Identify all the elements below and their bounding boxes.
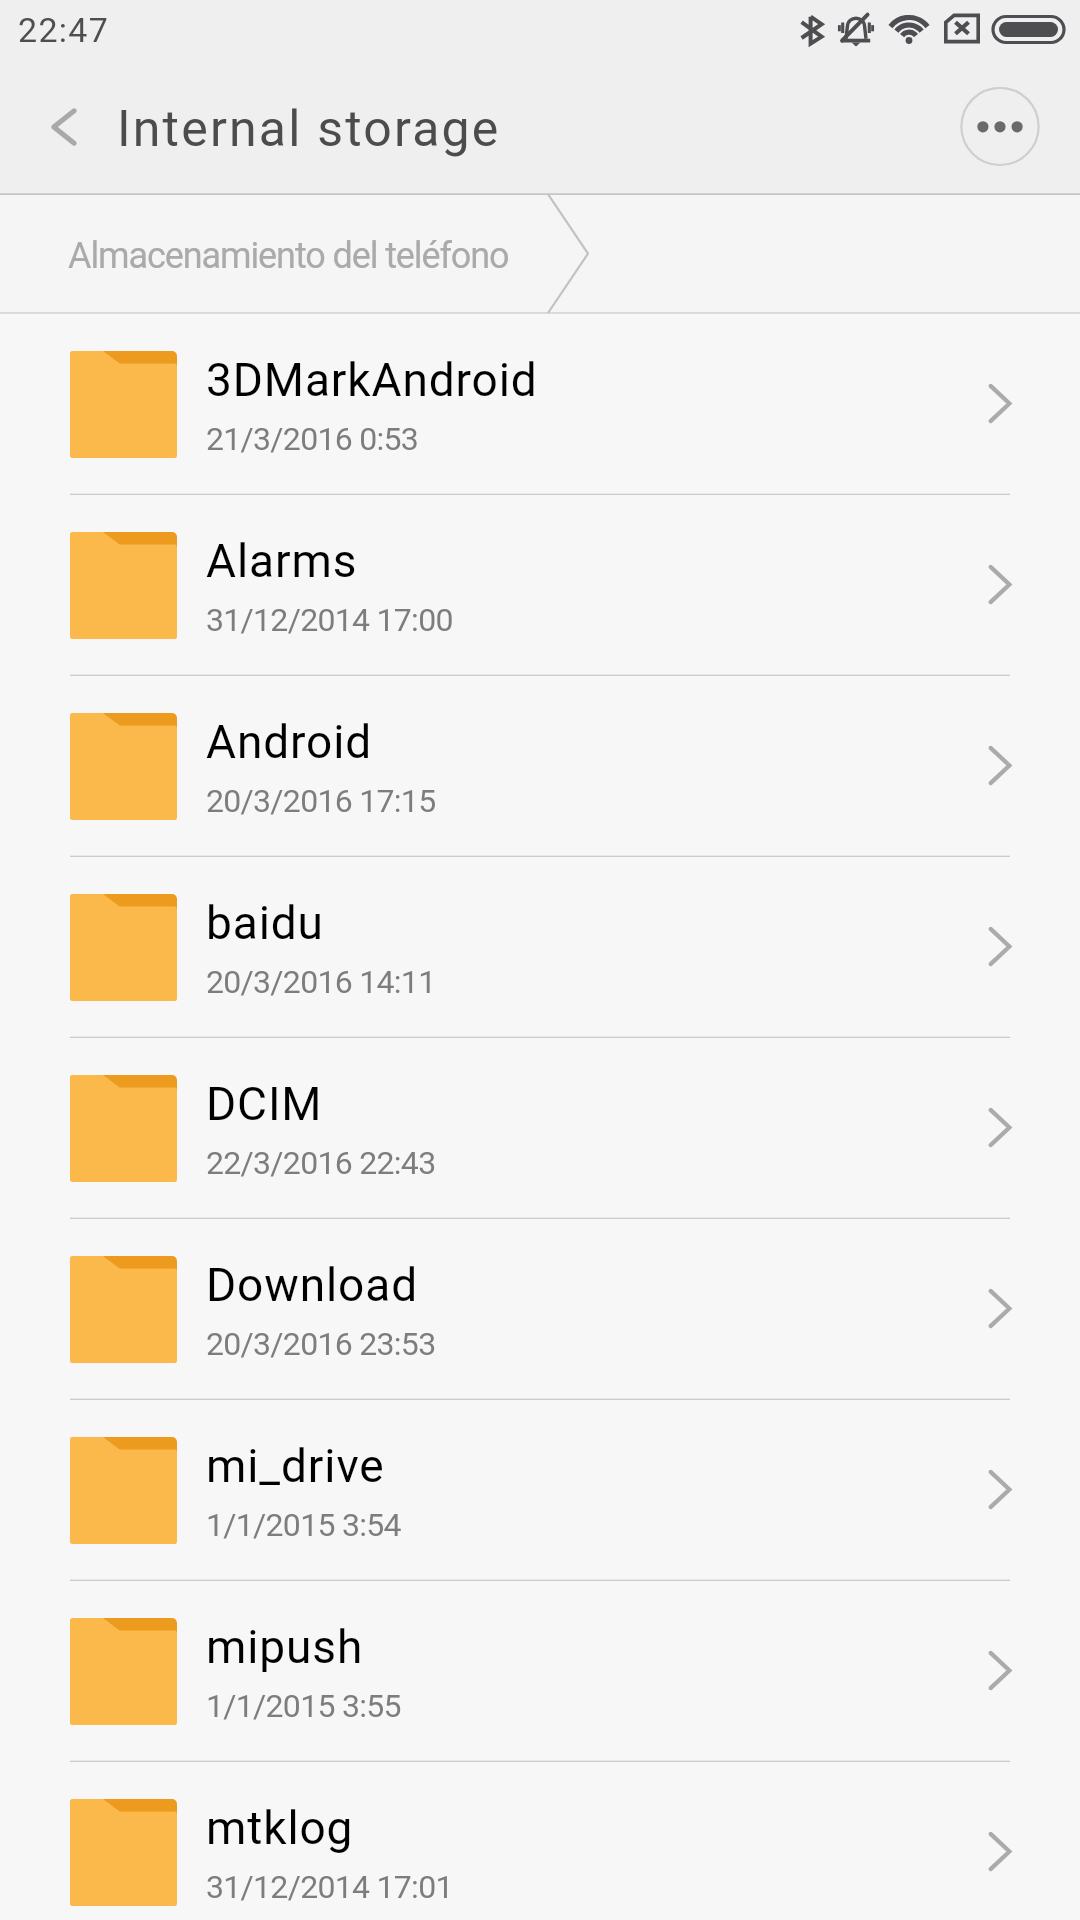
staticText: 20/3/2016 14:11 bbox=[206, 963, 436, 1001]
staticText: 3DMarkAndroid bbox=[206, 353, 538, 407]
button[interactable]: mipush bbox=[0, 1580, 1080, 1760]
staticText: Internal storage bbox=[117, 100, 501, 159]
staticText: 20/3/2016 17:15 bbox=[206, 782, 436, 820]
staticText: DCIM bbox=[206, 1077, 323, 1131]
button[interactable]: DCIM bbox=[0, 1037, 1080, 1217]
button[interactable]: Android bbox=[0, 675, 1080, 855]
staticText: Android bbox=[206, 715, 373, 769]
button[interactable]: mtklog bbox=[0, 1761, 1080, 1920]
staticText: mi_drive bbox=[206, 1439, 385, 1493]
staticText: 21/3/2016 0:53 bbox=[206, 420, 419, 458]
button[interactable]: Alarms bbox=[0, 494, 1080, 674]
button[interactable]: 3DMarkAndroid bbox=[0, 313, 1080, 493]
staticText: mipush bbox=[206, 1620, 364, 1674]
staticText: 22/3/2016 22:43 bbox=[206, 1144, 436, 1182]
staticText: baidu bbox=[206, 896, 324, 950]
staticText: 20/3/2016 23:53 bbox=[206, 1325, 436, 1363]
staticText: mtklog bbox=[206, 1801, 354, 1855]
button[interactable]: Back bbox=[22, 85, 106, 169]
staticText: 31/12/2014 17:00 bbox=[206, 601, 453, 639]
button[interactable]: Download bbox=[0, 1218, 1080, 1398]
button[interactable]: baidu bbox=[0, 856, 1080, 1036]
staticText: Almacenamiento del teléfono bbox=[68, 235, 509, 277]
button[interactable]: Almacenamiento del teléfono bbox=[0, 195, 588, 313]
button[interactable]: More options bbox=[959, 85, 1041, 167]
staticText: 1/1/2015 3:54 bbox=[206, 1506, 401, 1544]
staticText: 1/1/2015 3:55 bbox=[206, 1687, 401, 1725]
button[interactable]: mi_drive bbox=[0, 1399, 1080, 1579]
staticText: 31/12/2014 17:01 bbox=[206, 1868, 453, 1906]
staticText: Alarms bbox=[206, 534, 358, 588]
staticText: 22:47 bbox=[18, 10, 110, 50]
staticText: Download bbox=[206, 1258, 418, 1312]
